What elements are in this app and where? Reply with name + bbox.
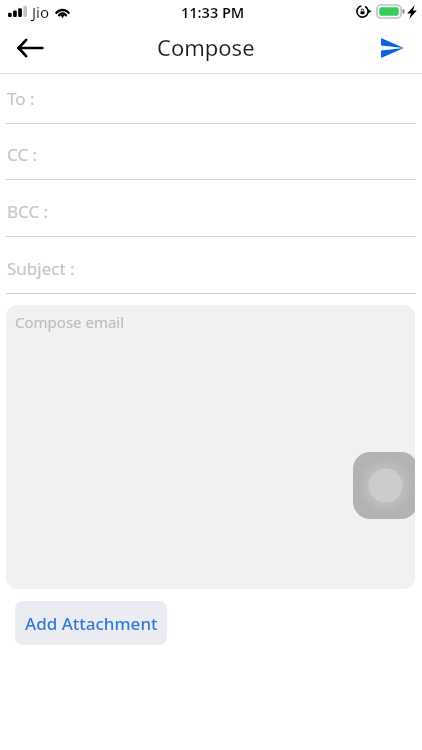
button[interactable]: Send [370,26,414,70]
staticText: CC : [7,143,38,166]
staticText: 11:33 PM [181,2,245,22]
staticText: Compose email [15,312,125,332]
staticText: To : [7,87,35,110]
staticText: Jio [32,2,50,22]
button[interactable]: Resize [353,452,415,519]
button[interactable]: Compose email [6,305,415,589]
staticText: Subject : [7,257,75,280]
button[interactable]: Add Attachment [15,601,167,645]
staticText: BCC : [7,200,49,223]
staticText: Add Attachment [25,612,158,635]
staticText: Compose [157,32,255,62]
button[interactable]: Back [8,26,52,70]
